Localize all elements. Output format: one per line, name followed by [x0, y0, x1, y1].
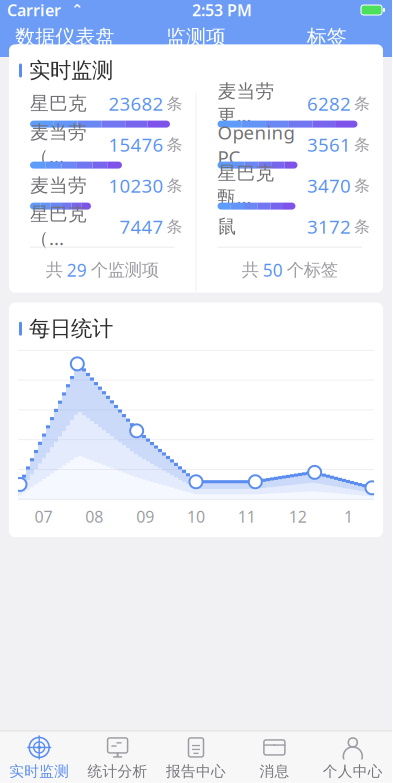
staticText: 数据仪表盘: [15, 25, 115, 49]
staticText: 3172: [307, 214, 351, 239]
staticText: 条: [354, 135, 370, 154]
staticText: 报告中心: [166, 762, 226, 780]
staticText: 监测项: [166, 25, 226, 49]
staticText: 09: [136, 506, 154, 527]
staticText: 条: [166, 94, 182, 113]
button[interactable]: 数据仪表盘: [0, 20, 131, 57]
staticText: 个标签: [287, 259, 338, 281]
button[interactable]: 星巴克甄...: [196, 174, 383, 215]
staticText: 实时监测: [9, 762, 69, 780]
button[interactable]: 麦当劳更...: [196, 92, 383, 133]
staticText: 23682: [108, 91, 163, 116]
button[interactable]: 星巴克: [9, 92, 195, 133]
staticText: 条: [354, 217, 370, 236]
button[interactable]: 麦当劳（...: [9, 133, 195, 174]
button[interactable]: 麦当劳: [9, 174, 195, 215]
button[interactable]: 个人中心: [314, 735, 392, 780]
staticText: 2:53 PM: [192, 0, 252, 21]
staticText: 标签: [307, 25, 347, 49]
staticText: 个监测项: [91, 259, 159, 281]
button[interactable]: 消息: [235, 735, 314, 780]
staticText: 麦当劳: [30, 174, 87, 197]
staticText: 12: [289, 506, 307, 527]
staticText: 10230: [108, 173, 163, 198]
staticText: 个人中心: [323, 762, 383, 780]
staticText: 条: [166, 176, 182, 195]
button[interactable]: 报告中心: [157, 735, 235, 780]
staticText: 3470: [307, 173, 351, 198]
staticText: 共: [46, 259, 63, 281]
staticText: 星巴克（...: [30, 203, 87, 250]
staticText: 6282: [307, 91, 351, 116]
button[interactable]: 统计分析: [78, 735, 157, 780]
staticText: 10: [187, 506, 205, 527]
button[interactable]: 标签: [261, 20, 392, 57]
staticText: 条: [166, 217, 182, 236]
button[interactable]: 实时监测: [0, 735, 78, 780]
staticText: 星巴克: [30, 92, 87, 115]
staticText: 消息: [259, 762, 289, 780]
staticText: 实时监测: [29, 57, 113, 84]
staticText: 麦当劳（...: [30, 121, 87, 168]
button[interactable]: 星巴克（...: [9, 215, 195, 242]
staticText: Carrier: [7, 0, 61, 21]
staticText: 3561: [307, 132, 351, 157]
staticText: 鼠: [217, 215, 236, 238]
staticText: 11: [238, 506, 256, 527]
staticText: 统计分析: [88, 762, 148, 780]
staticText: 每日统计: [29, 316, 113, 342]
staticText: 条: [354, 176, 370, 195]
staticText: 麦当劳更...: [217, 80, 274, 127]
staticText: ⌃: [61, 2, 83, 18]
staticText: 条: [354, 94, 370, 113]
staticText: 29: [67, 259, 87, 282]
button[interactable]: 鼠: [196, 215, 383, 242]
staticText: 50: [263, 259, 283, 282]
staticText: 7447: [119, 214, 163, 239]
staticText: 08: [85, 506, 103, 527]
button[interactable]: Opening PC: [196, 133, 383, 174]
staticText: 15476: [108, 132, 163, 157]
staticText: 07: [34, 506, 52, 527]
staticText: 星巴克甄...: [217, 162, 274, 209]
staticText: Opening PC: [217, 120, 294, 169]
staticText: 1: [344, 506, 353, 527]
staticText: 条: [166, 135, 182, 154]
staticText: 共: [242, 259, 259, 281]
button[interactable]: 监测项: [131, 20, 261, 57]
